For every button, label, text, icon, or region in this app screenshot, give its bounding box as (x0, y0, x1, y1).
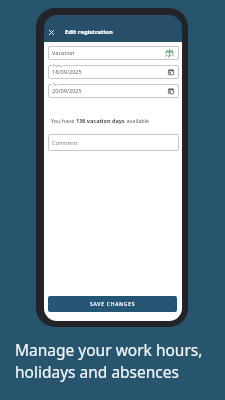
button[interactable]: Close (45, 26, 58, 39)
staticText: 136 vacation days (76, 117, 125, 124)
staticText: holidays and absences (15, 361, 179, 382)
staticText: 18/09/2025 (52, 68, 82, 76)
staticText: Manage your work hours, (15, 339, 203, 360)
button[interactable]: 20/09/2025 (48, 84, 179, 98)
button[interactable]: 18/09/2025 (48, 65, 179, 79)
staticText: Edit registration (65, 28, 113, 36)
staticText: You have (51, 117, 76, 124)
staticText: 20/09/2025 (52, 87, 82, 95)
button[interactable]: Comment (48, 134, 179, 151)
staticText: To (53, 82, 57, 87)
staticText: Vacation (52, 49, 75, 57)
staticText: Comment (52, 139, 78, 146)
staticText: SAVE CHANGES (90, 301, 136, 308)
staticText: available (125, 117, 150, 124)
staticText: From (53, 63, 62, 68)
button[interactable]: Vacation (48, 46, 179, 60)
button[interactable]: SAVE CHANGES (48, 296, 177, 312)
